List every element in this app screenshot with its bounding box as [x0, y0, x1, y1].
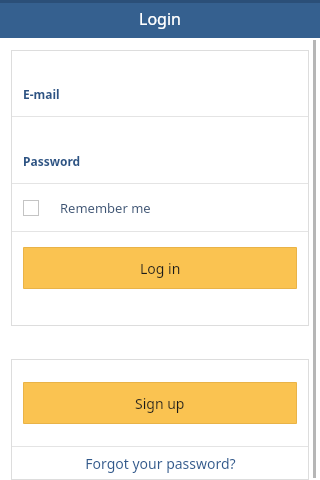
button[interactable]: E-mail [11, 50, 309, 116]
staticText: Login [139, 8, 181, 30]
button[interactable]: Sign up [23, 382, 297, 424]
staticText: E-mail [23, 86, 60, 102]
staticText: Sign up [135, 394, 185, 413]
staticText: Log in [140, 259, 181, 278]
button[interactable]: Forgot your password? [11, 447, 309, 480]
button[interactable]: Log in [23, 247, 297, 289]
button[interactable]: Password [11, 117, 309, 183]
staticText: Forgot your password? [85, 454, 236, 473]
button[interactable]: Remember me [11, 184, 309, 231]
staticText: Password [23, 153, 81, 169]
staticText: Remember me [60, 199, 151, 217]
